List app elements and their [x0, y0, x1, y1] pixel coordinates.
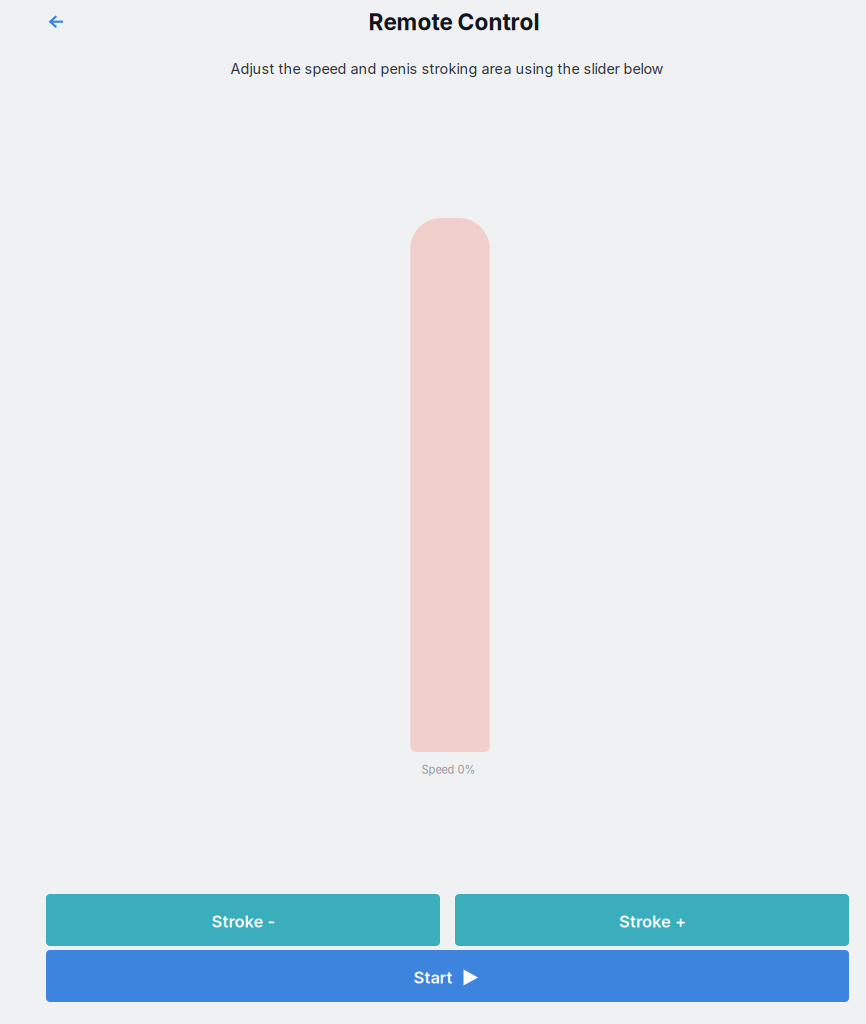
button[interactable]: Stroke - [46, 894, 440, 946]
button[interactable]: Back [0, 1, 78, 43]
staticText: Start [413, 967, 452, 987]
staticText: Stroke + [619, 911, 686, 931]
staticText: Speed 0% [421, 763, 475, 776]
staticText: Remote Control [368, 8, 539, 36]
button[interactable]: Stroke + [455, 894, 849, 946]
button[interactable]: Start [46, 950, 849, 1002]
staticText: Adjust the speed and penis stroking area… [230, 60, 663, 77]
staticText: Stroke - [211, 911, 275, 931]
